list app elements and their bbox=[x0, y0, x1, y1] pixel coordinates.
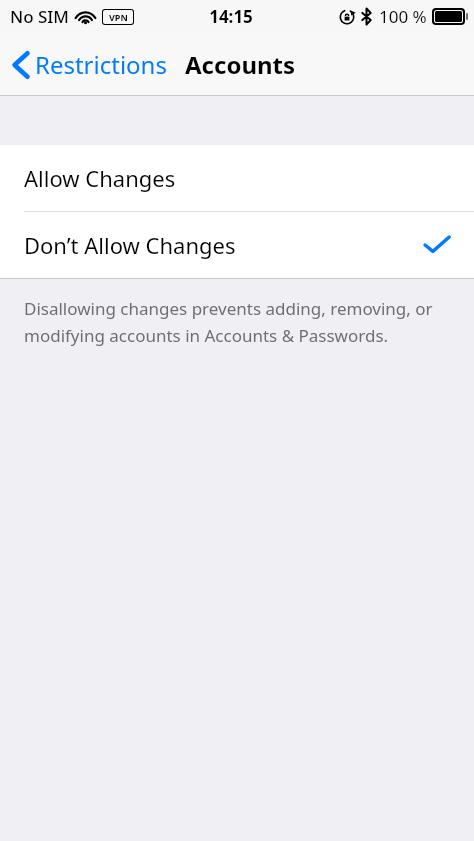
button[interactable]: Allow Changes bbox=[0, 145, 474, 211]
staticText: No SIM bbox=[10, 5, 69, 28]
staticText: Disallowing changes prevents adding, rem… bbox=[24, 297, 452, 347]
staticText: 14:15 bbox=[209, 5, 253, 28]
staticText: Restrictions bbox=[35, 48, 167, 81]
other: Back bbox=[12, 51, 30, 79]
staticText: 100 % bbox=[379, 5, 427, 28]
button[interactable]: Don’t Allow Changes bbox=[0, 212, 474, 278]
staticText: Accounts bbox=[185, 48, 296, 81]
staticText: Allow Changes bbox=[24, 163, 176, 193]
staticText: VPN bbox=[109, 11, 128, 23]
button[interactable]: Back bbox=[12, 48, 167, 81]
staticText: Don’t Allow Changes bbox=[24, 230, 236, 260]
